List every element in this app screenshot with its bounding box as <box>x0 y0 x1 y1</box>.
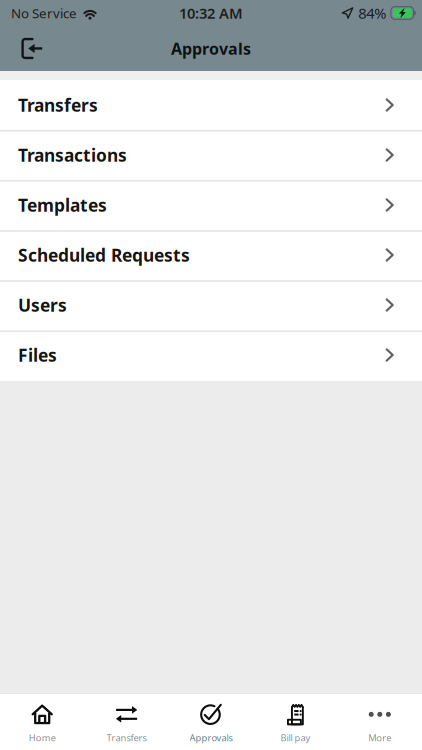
button[interactable]: Transactions <box>0 130 422 180</box>
staticText: 84% <box>358 3 386 23</box>
staticText: Transfers <box>107 731 147 744</box>
staticText: Templates <box>18 193 107 216</box>
button[interactable]: Bill pay <box>253 693 338 750</box>
button[interactable]: Approvals <box>169 693 253 750</box>
staticText: Approvals <box>189 731 232 744</box>
staticText: 10:32 AM <box>179 3 243 23</box>
button[interactable]: Files <box>0 330 422 380</box>
button[interactable]: Users <box>0 280 422 330</box>
button[interactable]: Templates <box>0 180 422 230</box>
staticText: Users <box>18 293 67 316</box>
staticText: Transfers <box>18 93 98 116</box>
staticText: Approvals <box>171 38 251 59</box>
staticText: Files <box>18 343 57 366</box>
staticText: More <box>368 731 391 744</box>
button[interactable]: Transfers <box>84 693 169 750</box>
staticText: Transactions <box>18 143 127 166</box>
button[interactable]: Transfers <box>0 80 422 130</box>
staticText: Scheduled Requests <box>18 243 190 266</box>
staticText: Home <box>29 731 56 744</box>
staticText: Bill pay <box>280 731 310 744</box>
button[interactable]: Scheduled Requests <box>0 230 422 280</box>
button[interactable]: Sign out <box>9 26 55 70</box>
button[interactable]: More <box>338 693 422 750</box>
button[interactable]: Home <box>0 693 84 750</box>
staticText: No Service <box>11 4 77 22</box>
